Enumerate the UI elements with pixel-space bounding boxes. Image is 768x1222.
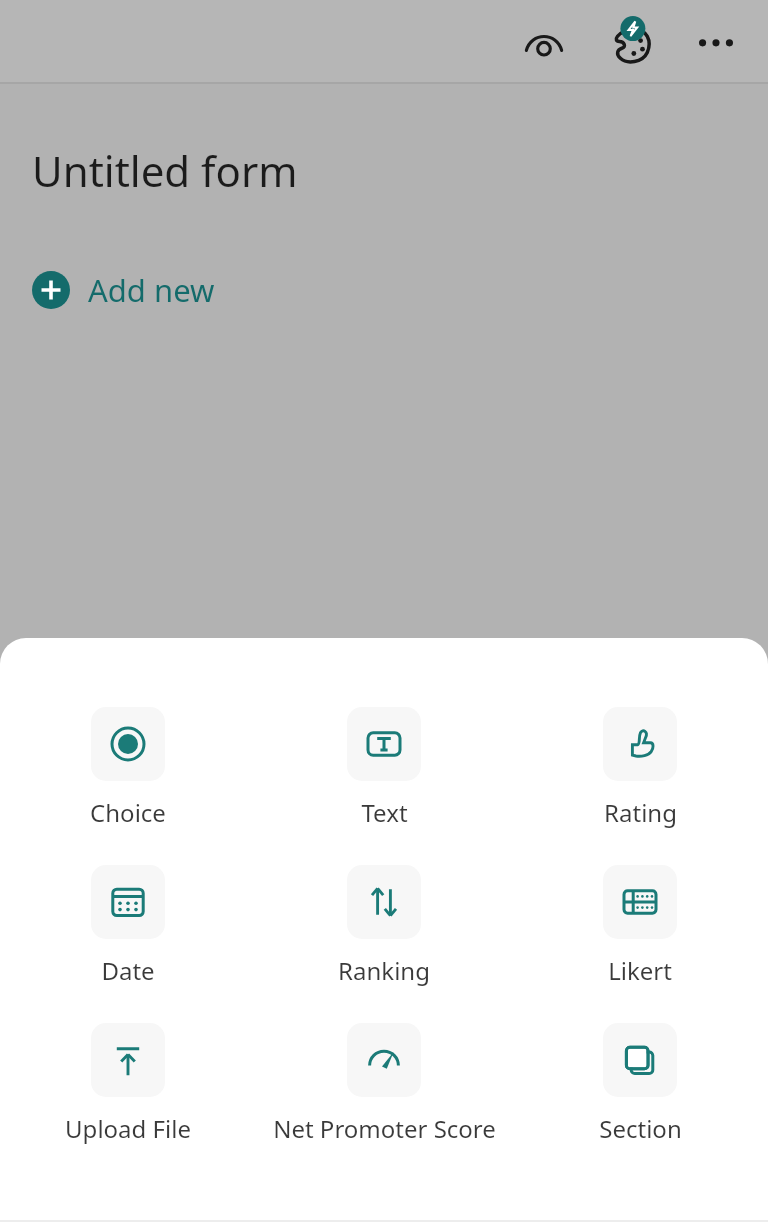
button[interactable]: Rating	[512, 705, 768, 831]
staticText: Date	[101, 954, 155, 987]
button[interactable]: Net Promoter Score	[256, 1021, 512, 1147]
staticText: Likert	[608, 954, 672, 987]
staticText: Rating	[604, 796, 677, 829]
staticText: Ranking	[338, 954, 430, 987]
staticText: Choice	[90, 796, 166, 829]
staticText: Upload File	[65, 1112, 191, 1145]
button[interactable]: Text	[256, 705, 512, 831]
button[interactable]: Upload File	[0, 1021, 256, 1147]
staticText: Net Promoter Score	[273, 1112, 496, 1145]
button[interactable]: Add new	[26, 261, 221, 319]
button[interactable]: Ranking	[256, 863, 512, 989]
button[interactable]: Date	[0, 863, 256, 989]
staticText: Text	[361, 796, 408, 829]
button[interactable]: Likert	[512, 863, 768, 989]
staticText: Add new	[88, 269, 215, 311]
button[interactable]: Choice	[0, 705, 256, 831]
staticText: Untitled form	[32, 142, 298, 199]
button[interactable]: Theme	[600, 12, 660, 72]
button[interactable]: Preview	[514, 12, 574, 72]
button[interactable]: Section	[512, 1021, 768, 1147]
staticText: Section	[599, 1112, 682, 1145]
button[interactable]: More options	[686, 12, 746, 72]
